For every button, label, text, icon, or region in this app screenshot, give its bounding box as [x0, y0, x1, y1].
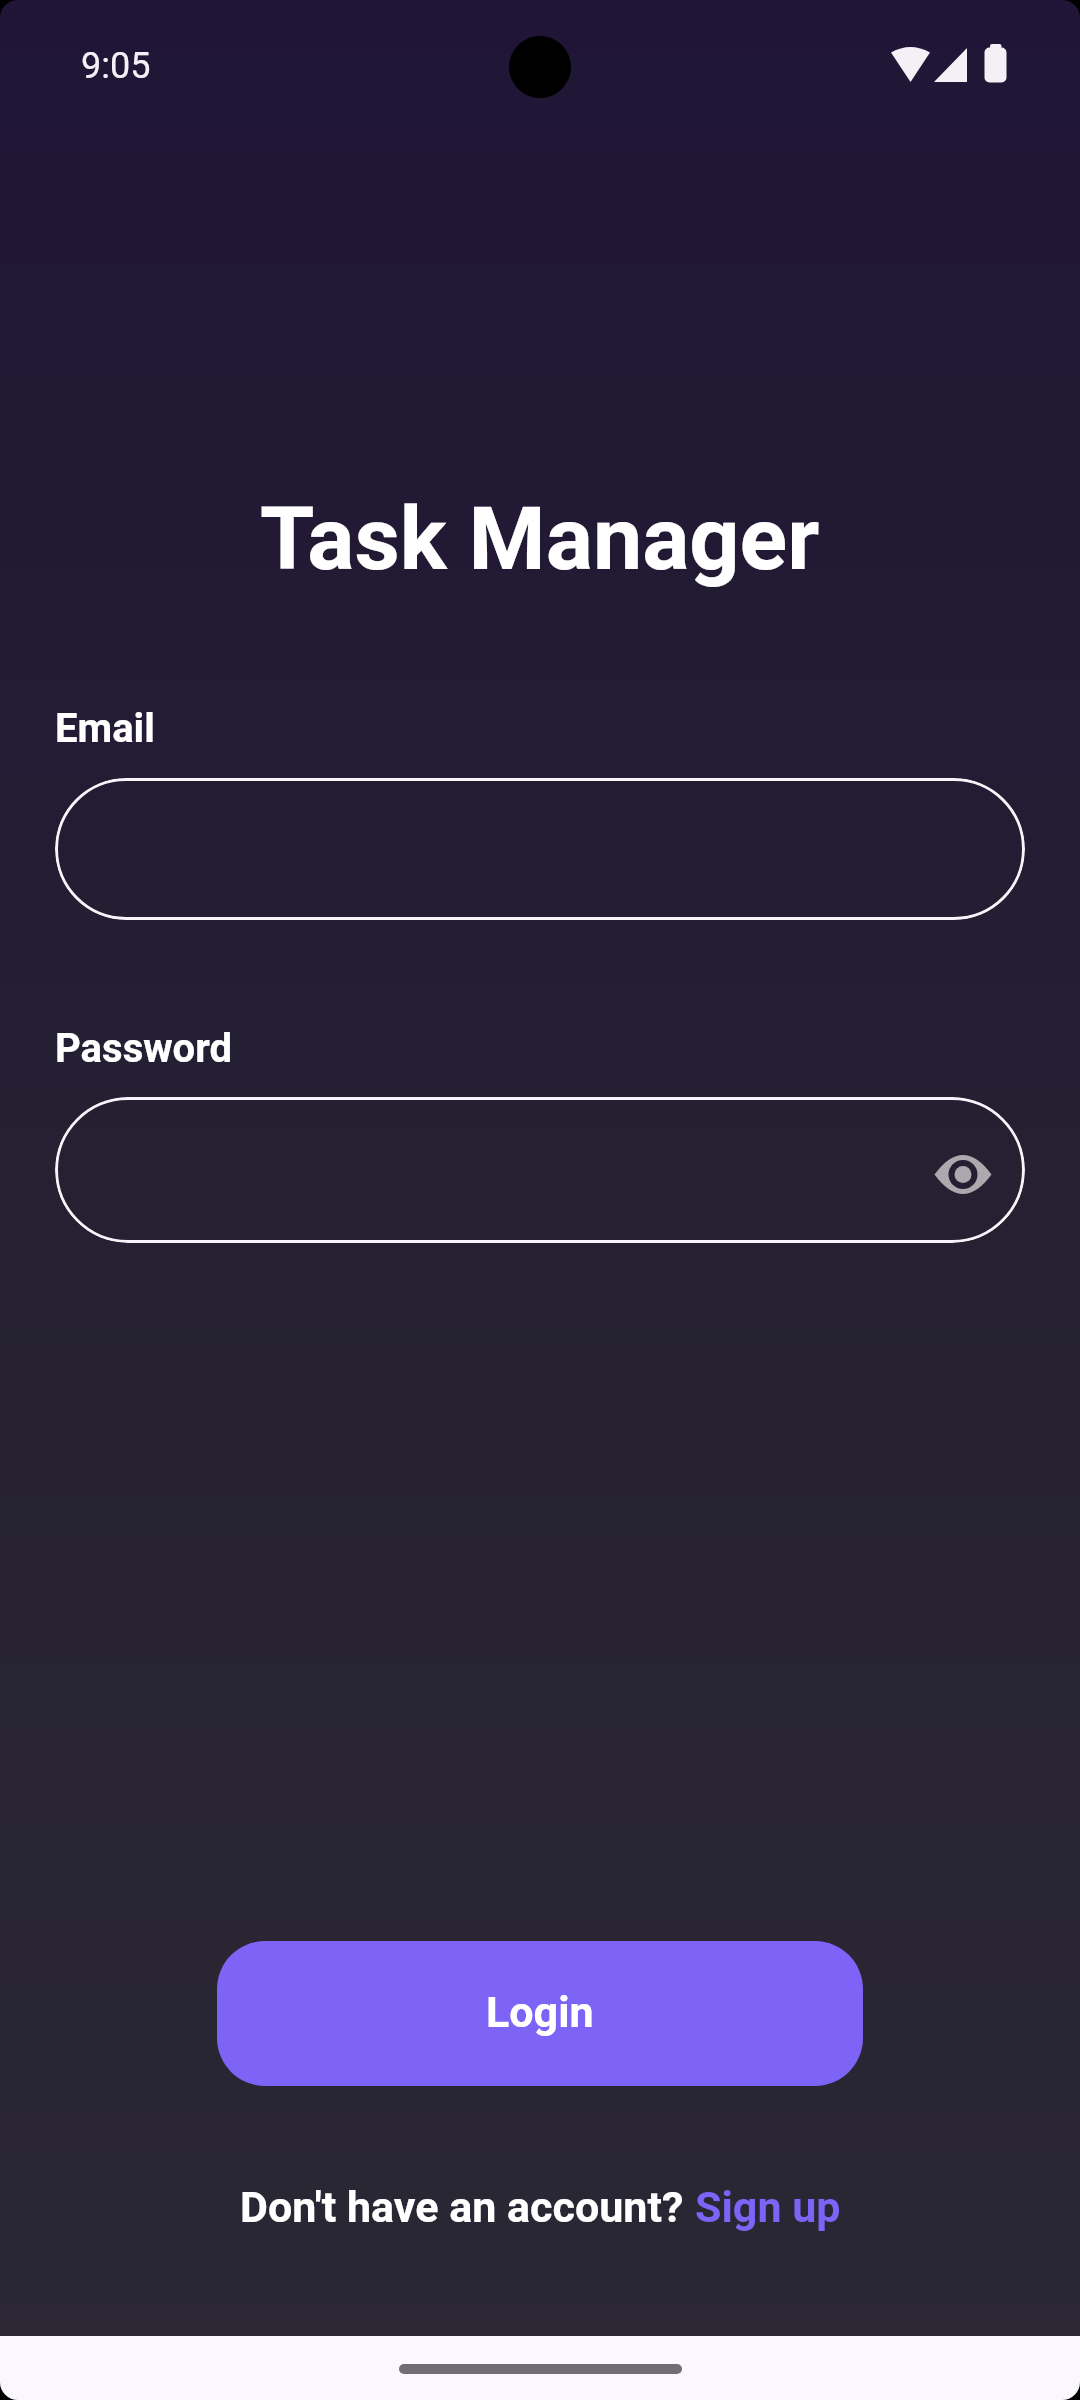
button[interactable]: [55, 1097, 1025, 1243]
button[interactable]: [934, 1154, 992, 1196]
button[interactable]: Login: [217, 1941, 863, 2086]
staticText: 9:05: [81, 45, 151, 87]
button[interactable]: Sign up: [695, 2182, 841, 2232]
button[interactable]: [55, 778, 1025, 920]
staticText: Email: [55, 705, 155, 752]
staticText: Task Manager: [260, 487, 820, 590]
staticText: Login: [486, 1987, 594, 2037]
staticText: Don't have an account?: [240, 2182, 695, 2232]
staticText: Password: [55, 1025, 233, 1072]
